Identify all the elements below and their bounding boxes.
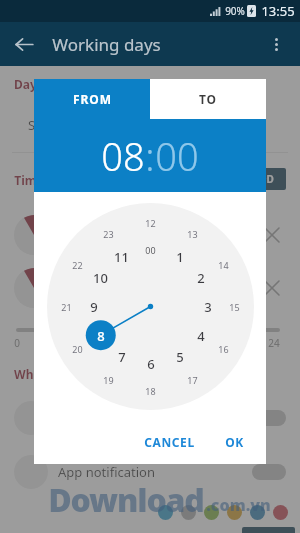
button[interactable]: [204, 505, 219, 520]
staticText: 1: [176, 248, 184, 266]
staticText: 0: [14, 336, 20, 350]
staticText: 22: [72, 259, 83, 271]
button[interactable]: App notification: [0, 452, 300, 492]
button[interactable]: Email: [0, 398, 300, 438]
staticText: 4: [197, 327, 205, 345]
staticText: 8: [97, 327, 105, 345]
staticText: 90%: [225, 4, 245, 18]
staticText: 13: [187, 228, 198, 240]
button[interactable]: [181, 505, 196, 520]
staticText: S M T W T F S: [28, 116, 128, 134]
staticText: 23: [103, 228, 114, 240]
staticText: 08: [101, 130, 145, 182]
staticText: 7: [118, 348, 126, 366]
button[interactable]: Remove: [262, 225, 282, 245]
staticText: 15: [229, 301, 240, 313]
button[interactable]: FROM: [34, 79, 150, 119]
staticText: 14: [218, 259, 229, 271]
staticText: 5: [176, 348, 184, 366]
staticText: 20: [72, 343, 83, 355]
button[interactable]: Back: [4, 24, 44, 64]
staticText: TO: [199, 91, 217, 107]
staticText: ADD: [252, 172, 274, 186]
button[interactable]: [273, 505, 288, 520]
staticText: 17: [187, 374, 198, 386]
staticText: 9: [90, 298, 98, 316]
staticText: What: [14, 366, 46, 382]
staticText: 3: [204, 298, 212, 316]
staticText: .com.vn: [206, 494, 271, 516]
staticText: Days: [14, 76, 43, 92]
staticText: 19: [103, 374, 114, 386]
button[interactable]: CANCEL: [134, 426, 205, 458]
button[interactable]: ADD: [240, 168, 286, 190]
button[interactable]: OK: [215, 426, 254, 458]
staticText: 21: [61, 301, 72, 313]
staticText: 16: [218, 343, 229, 355]
staticText: 2: [197, 269, 205, 287]
staticText: 10: [93, 269, 108, 287]
button[interactable]: More options: [256, 24, 296, 64]
staticText: 18: [145, 385, 156, 397]
staticText: 24: [268, 336, 280, 350]
staticText: FROM: [73, 91, 112, 107]
staticText: Download: [48, 478, 204, 522]
staticText: OK: [225, 434, 244, 450]
staticText: Time: [14, 172, 44, 188]
button[interactable]: [250, 505, 265, 520]
button[interactable]: [158, 505, 173, 520]
staticText: 12: [145, 217, 156, 229]
staticText: 11: [114, 248, 129, 266]
button[interactable]: TO: [150, 79, 266, 119]
staticText: Working days: [52, 33, 161, 56]
staticText: App notification: [58, 463, 155, 481]
staticText: 13:55: [261, 2, 295, 20]
staticText: CANCEL: [144, 434, 195, 450]
staticText: 00: [145, 244, 156, 256]
staticText: :: [145, 130, 155, 182]
staticText: 00: [155, 130, 199, 182]
button[interactable]: [227, 505, 242, 520]
button[interactable]: Remove: [262, 278, 282, 298]
staticText: 6: [147, 355, 155, 373]
